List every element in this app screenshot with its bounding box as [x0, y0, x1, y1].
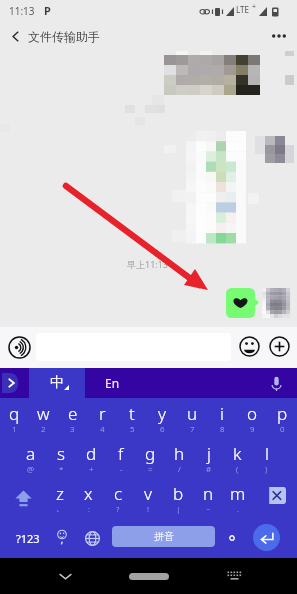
button[interactable]: b: [163, 478, 193, 518]
staticText: (: [236, 463, 239, 474]
staticText: q: [9, 402, 20, 425]
button[interactable]: y: [147, 398, 177, 438]
staticText: i: [220, 402, 224, 425]
staticText: 8: [220, 423, 225, 434]
staticText: :: [88, 503, 90, 514]
button[interactable]: Heart message: [226, 288, 259, 318]
staticText: 早上11:13: [127, 258, 169, 270]
staticText: h: [174, 442, 185, 465]
button[interactable]: Shift: [8, 478, 38, 518]
button[interactable]: d: [76, 438, 106, 478]
staticText: 5: [130, 423, 135, 434]
staticText: g: [145, 442, 156, 465]
staticText: t: [129, 402, 135, 425]
staticText: *: [59, 463, 64, 474]
staticText: 中: [50, 374, 64, 392]
button[interactable]: k: [223, 438, 252, 478]
button[interactable]: f: [106, 438, 136, 478]
button[interactable]: h: [165, 438, 194, 478]
button[interactable]: p: [267, 398, 297, 438]
button[interactable]: 中: [29, 368, 85, 398]
button[interactable]: En: [90, 368, 140, 398]
button[interactable]: m: [223, 478, 253, 518]
button[interactable]: Voice input: [264, 372, 288, 394]
button[interactable]: r: [87, 398, 117, 438]
staticText: P: [44, 3, 51, 18]
button[interactable]: v: [133, 478, 163, 518]
staticText: u: [187, 402, 198, 425]
staticText: v: [144, 482, 152, 505]
staticText: m: [230, 482, 246, 505]
staticText: 7: [190, 423, 195, 434]
button[interactable]: More functions: [268, 335, 291, 358]
staticText: 0: [280, 423, 285, 434]
staticText: @: [27, 463, 35, 474]
button[interactable]: Home: [129, 573, 169, 580]
staticText: 3: [70, 423, 75, 434]
button[interactable]: Hide keyboard: [50, 558, 80, 594]
staticText: .: [237, 503, 239, 514]
staticText: #: [206, 463, 212, 474]
button[interactable]: Voice input: [7, 335, 31, 359]
button[interactable]: e: [58, 398, 87, 438]
button[interactable]: o: [237, 398, 267, 438]
staticText: k: [233, 442, 242, 465]
staticText: y: [158, 402, 166, 425]
staticText: /: [178, 463, 181, 474]
staticText: x: [84, 482, 93, 505]
staticText: ~: [206, 503, 211, 514]
button[interactable]: Back: [4, 22, 26, 50]
staticText: c: [114, 482, 123, 505]
staticText: LTE: [236, 4, 249, 15]
staticText: 2: [41, 423, 46, 434]
staticText: +: [252, 2, 257, 12]
staticText: r: [99, 402, 106, 425]
button[interactable]: g: [136, 438, 165, 478]
button[interactable]: Enter: [253, 524, 280, 551]
button[interactable]: 拼音: [112, 526, 215, 547]
staticText: w: [37, 402, 50, 425]
staticText: z: [56, 482, 64, 505]
button[interactable]: s: [46, 438, 76, 478]
staticText: 、: [56, 503, 64, 513]
staticText: d: [86, 442, 97, 465]
staticText: 1: [12, 423, 17, 434]
staticText: p: [277, 402, 288, 425]
button[interactable]: x: [74, 478, 103, 518]
button[interactable]: q: [0, 398, 29, 438]
button[interactable]: Backspace: [262, 487, 286, 504]
button[interactable]: i: [207, 398, 237, 438]
button[interactable]: w: [29, 398, 58, 438]
staticText: 4: [100, 423, 105, 434]
staticText: 6: [160, 423, 165, 434]
staticText: o: [247, 402, 258, 425]
button[interactable]: [218, 518, 246, 558]
button[interactable]: u: [177, 398, 207, 438]
button[interactable]: Emoji: [238, 335, 261, 358]
button[interactable]: j: [194, 438, 223, 478]
staticText: =: [148, 463, 153, 474]
staticText: |: [176, 503, 181, 514]
button[interactable]: a: [16, 438, 46, 478]
button[interactable]: Keyboard: [218, 558, 250, 594]
button[interactable]: t: [117, 398, 147, 438]
button[interactable]: l: [252, 438, 281, 478]
staticText: e: [68, 402, 78, 425]
button[interactable]: Switch language: [78, 518, 106, 558]
staticText: s: [57, 442, 65, 465]
button[interactable]: Emoji keyboard: [48, 518, 76, 558]
staticText: j: [207, 442, 211, 465]
button[interactable]: z: [45, 478, 74, 518]
staticText: 11:13: [9, 4, 35, 18]
staticText: l: [265, 442, 269, 465]
button[interactable]: Expand keyboard: [2, 373, 18, 393]
staticText: f: [118, 442, 124, 465]
button[interactable]: More options: [265, 22, 293, 50]
button[interactable]: ?123: [6, 518, 50, 558]
button[interactable]: n: [193, 478, 223, 518]
staticText: ?123: [16, 531, 40, 546]
staticText: ): [265, 463, 268, 474]
staticText: ?: [116, 503, 120, 514]
button[interactable]: c: [103, 478, 133, 518]
